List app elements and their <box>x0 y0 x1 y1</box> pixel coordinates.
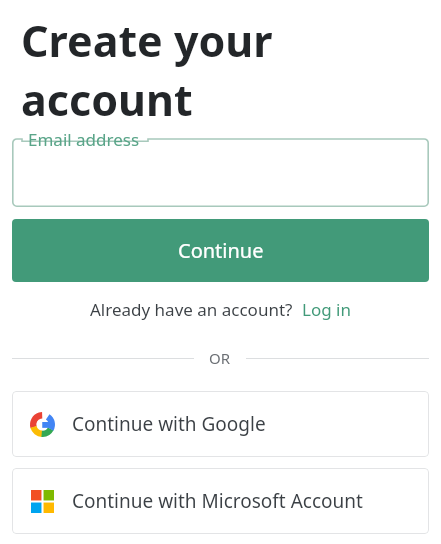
staticText: Email address <box>28 128 140 151</box>
staticText: Continue with Microsoft Account <box>72 488 363 514</box>
button[interactable]: Continue with Microsoft Account <box>12 468 429 534</box>
staticText: Already have an account? <box>90 298 293 321</box>
staticText: Continue <box>178 237 264 264</box>
staticText: Create your account <box>21 11 441 129</box>
button[interactable]: Continue <box>12 219 429 282</box>
button[interactable]: Email address <box>12 138 429 207</box>
button[interactable]: Log in <box>302 298 351 321</box>
staticText: OR <box>209 348 231 368</box>
staticText: Continue with Google <box>72 411 266 437</box>
staticText: Log in <box>302 298 351 321</box>
button[interactable]: Continue with Google <box>12 391 429 457</box>
